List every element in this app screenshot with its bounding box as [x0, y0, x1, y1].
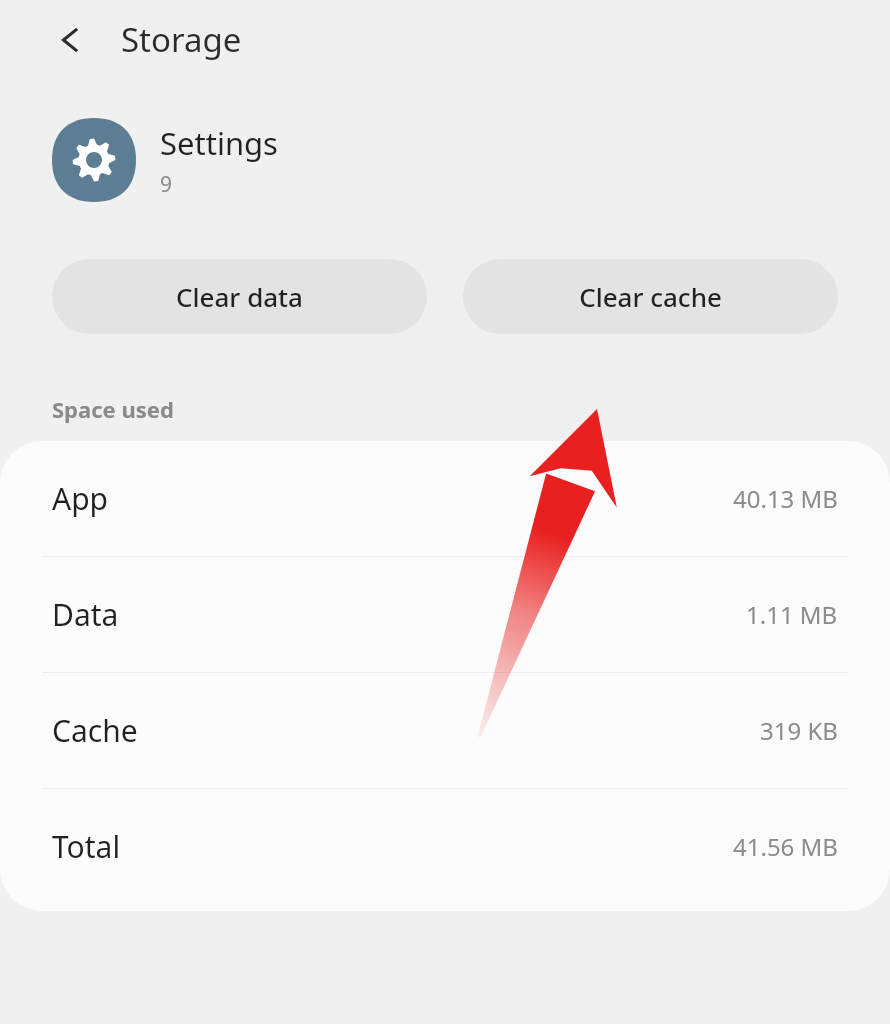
- staticText: Clear cache: [579, 279, 722, 314]
- button[interactable]: Cache: [0, 673, 890, 788]
- staticText: Cache: [52, 710, 138, 751]
- staticText: Data: [52, 594, 119, 635]
- button[interactable]: Clear cache: [463, 259, 838, 334]
- button[interactable]: Data: [0, 557, 890, 672]
- staticText: Space used: [52, 394, 174, 424]
- staticText: 41.56 MB: [733, 830, 838, 863]
- button[interactable]: Back: [44, 14, 96, 66]
- staticText: 1.11 MB: [746, 598, 838, 631]
- staticText: 9: [160, 170, 173, 199]
- staticText: Clear data: [176, 279, 303, 314]
- button[interactable]: App: [0, 441, 890, 556]
- button[interactable]: Clear data: [52, 259, 427, 334]
- staticText: App: [52, 478, 109, 519]
- staticText: Settings: [160, 122, 278, 164]
- staticText: 40.13 MB: [733, 482, 838, 515]
- staticText: 319 KB: [760, 714, 838, 747]
- button[interactable]: Total: [0, 789, 890, 904]
- staticText: Total: [52, 826, 121, 867]
- staticText: Storage: [121, 17, 242, 62]
